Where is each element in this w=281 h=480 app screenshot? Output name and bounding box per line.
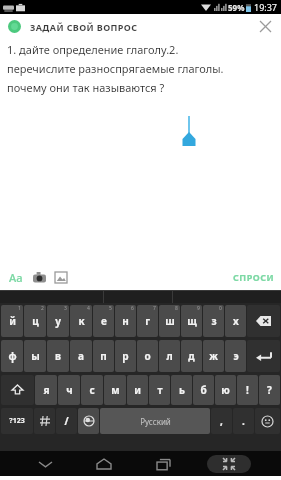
button[interactable]: !	[237, 375, 258, 405]
button[interactable]: л	[159, 340, 180, 372]
button[interactable]: Удалить	[247, 305, 280, 337]
staticText: ЗАДАЙ СВОЙ ВОПРОС	[30, 21, 138, 33]
button[interactable]: м	[104, 375, 126, 405]
button[interactable]: ю	[215, 375, 236, 405]
staticText: 59%	[228, 2, 245, 13]
button[interactable]: ч	[58, 375, 80, 405]
staticText: Русский	[140, 416, 171, 427]
button[interactable]: э	[225, 340, 246, 372]
button[interactable]: Настройки	[34, 408, 55, 434]
button[interactable]: и	[127, 375, 148, 405]
staticText: п	[100, 349, 107, 363]
button[interactable]: н	[115, 305, 136, 337]
button[interactable]: /	[56, 408, 77, 434]
staticText: ш	[165, 314, 175, 328]
staticText: 1	[18, 305, 21, 312]
button[interactable]: Закрыть	[253, 14, 277, 38]
staticText: ж	[209, 349, 218, 363]
staticText: 9	[197, 305, 200, 312]
button[interactable]: о	[137, 340, 158, 372]
button[interactable]: ш	[159, 305, 180, 337]
button[interactable]: т	[149, 375, 170, 405]
button[interactable]: к	[70, 305, 92, 337]
staticText: г	[145, 314, 150, 328]
staticText: з	[211, 314, 217, 328]
button[interactable]: Камера	[29, 267, 49, 287]
button[interactable]: СПРОСИ	[233, 271, 275, 283]
button[interactable]: щ	[181, 305, 202, 337]
staticText: у	[55, 314, 61, 328]
staticText: перечислите разноспрягаемые глаголы.	[7, 61, 224, 76]
staticText: х	[233, 314, 239, 328]
button[interactable]: Домой	[89, 453, 119, 475]
button[interactable]: Регистр	[1, 375, 34, 405]
staticText: ы	[31, 349, 40, 363]
button[interactable]: ж	[203, 340, 224, 372]
staticText: СПРОСИ	[233, 271, 275, 283]
button[interactable]: а	[70, 340, 92, 372]
button[interactable]: Недавние приложения	[148, 453, 178, 475]
staticText: л	[166, 349, 173, 363]
button[interactable]: х	[225, 305, 246, 337]
button[interactable]: ь	[171, 375, 192, 405]
button[interactable]: й	[1, 305, 23, 337]
button[interactable]: п	[93, 340, 114, 372]
button[interactable]: .	[233, 408, 254, 434]
staticText: и	[134, 383, 141, 397]
staticText: почему они так называются ?	[7, 80, 165, 95]
staticText: 4	[87, 305, 90, 312]
staticText: н	[122, 314, 129, 328]
staticText: .	[242, 414, 245, 428]
staticText: 0	[219, 305, 222, 312]
button[interactable]: р	[115, 340, 136, 372]
staticText: ч	[66, 383, 73, 397]
staticText: й	[9, 314, 16, 328]
button[interactable]: ц	[24, 305, 46, 337]
staticText: в	[55, 349, 61, 363]
staticText: д	[188, 349, 195, 363]
button[interactable]: Ввод	[247, 340, 280, 372]
button[interactable]: ?	[259, 375, 280, 405]
button[interactable]: Смайлики	[255, 408, 280, 434]
button[interactable]: с	[81, 375, 103, 405]
button[interactable]: д	[181, 340, 202, 372]
staticText: Aa	[9, 270, 23, 285]
staticText: б	[200, 383, 207, 397]
button[interactable]: ф	[1, 340, 23, 372]
button[interactable]: Галерея	[51, 267, 71, 287]
button[interactable]: б	[193, 375, 214, 405]
button[interactable]: у	[47, 305, 69, 337]
staticText: е	[101, 314, 107, 328]
staticText: !	[246, 383, 249, 397]
staticText: э	[233, 349, 239, 363]
staticText: ф	[8, 349, 17, 363]
staticText: к	[78, 314, 85, 328]
staticText: т	[157, 383, 163, 397]
staticText: р	[122, 349, 129, 363]
staticText: о	[144, 349, 151, 363]
button[interactable]: Полноэкранный режим	[207, 455, 251, 473]
button[interactable]: г	[137, 305, 158, 337]
staticText: щ	[187, 314, 197, 328]
button[interactable]: Русский	[100, 408, 210, 434]
staticText: а	[78, 349, 84, 363]
staticText: 6	[131, 305, 134, 312]
button[interactable]: я	[35, 375, 57, 405]
staticText: ь	[179, 383, 185, 397]
button[interactable]: ,	[211, 408, 232, 434]
button[interactable]: ы	[24, 340, 46, 372]
button[interactable]: е	[93, 305, 114, 337]
staticText: ю	[221, 383, 230, 397]
button[interactable]: в	[47, 340, 69, 372]
staticText: с	[89, 383, 95, 397]
button[interactable]: Скрыть клавиатуру	[30, 453, 60, 475]
staticText: 1. дайте определение глаголу.2.	[7, 42, 179, 57]
button[interactable]: з	[203, 305, 224, 337]
button[interactable]: ?123	[1, 408, 33, 434]
staticText: ?123	[9, 416, 25, 426]
staticText: м	[111, 383, 120, 397]
staticText: 5	[109, 305, 112, 312]
button[interactable]: Форматирование текста	[6, 267, 26, 287]
staticText: ?	[267, 383, 272, 397]
button[interactable]: Сменить язык	[78, 408, 99, 434]
